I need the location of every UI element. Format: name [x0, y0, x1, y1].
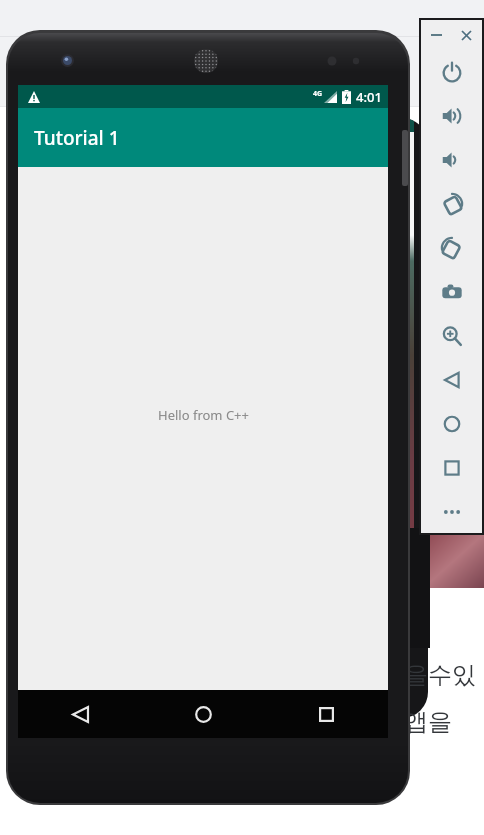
- staticText: 앱을: [404, 704, 459, 737]
- button[interactable]: Overview: [421, 446, 482, 490]
- staticText: Hello from C++: [158, 406, 249, 424]
- button[interactable]: Power: [421, 50, 482, 94]
- button[interactable]: Volume down: [421, 138, 482, 182]
- button[interactable]: Zoom: [421, 314, 482, 358]
- button[interactable]: Home: [142, 690, 265, 738]
- button[interactable]: Back: [421, 358, 482, 402]
- staticText: Tutorial 1: [34, 125, 120, 151]
- button[interactable]: More: [421, 490, 482, 534]
- staticText: 4:01: [356, 88, 382, 106]
- button[interactable]: Minimize: [421, 20, 451, 50]
- button[interactable]: Rotate right: [421, 226, 482, 270]
- button[interactable]: Home: [421, 402, 482, 446]
- button[interactable]: Take screenshot: [421, 270, 482, 314]
- button[interactable]: Rotate left: [421, 182, 482, 226]
- button[interactable]: Close: [451, 20, 482, 50]
- staticText: 을수있: [404, 660, 476, 690]
- button[interactable]: Volume up: [421, 94, 482, 138]
- button[interactable]: Overview: [265, 690, 388, 738]
- staticText: 4G: [313, 89, 323, 99]
- button[interactable]: Back: [18, 690, 142, 738]
